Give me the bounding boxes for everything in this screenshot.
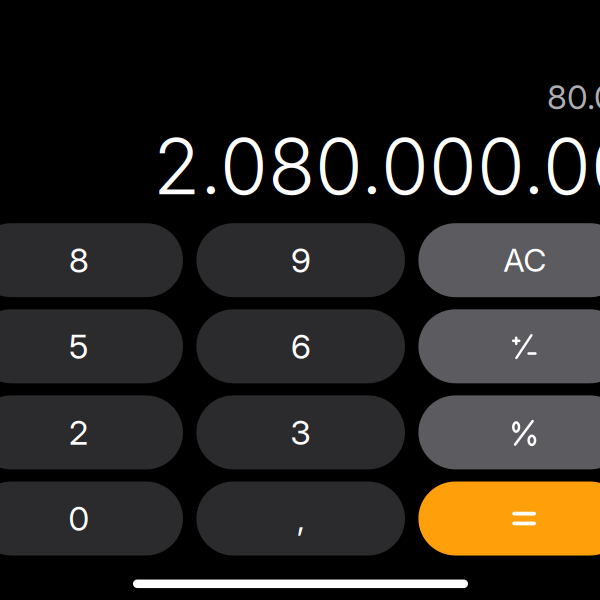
button[interactable]: Plus minus: [418, 309, 600, 383]
staticText: 2: [69, 412, 89, 453]
button[interactable]: 6: [196, 309, 405, 383]
staticText: 80.000,00: [547, 77, 600, 117]
staticText: 6: [291, 326, 311, 367]
button[interactable]: 5: [0, 309, 183, 383]
staticText: 8: [69, 240, 89, 281]
button[interactable]: ,: [196, 481, 405, 555]
staticText: AC: [503, 241, 546, 279]
button[interactable]: Equals: [418, 481, 600, 555]
button[interactable]: 3: [196, 395, 405, 469]
button[interactable]: All clear: [418, 223, 600, 297]
staticText: 0: [68, 498, 89, 539]
button[interactable]: 2: [0, 395, 183, 469]
button[interactable]: Percent: [418, 395, 600, 469]
staticText: 2.080.000.000,00: [153, 119, 600, 213]
button[interactable]: 8: [0, 223, 183, 297]
button[interactable]: 9: [196, 223, 405, 297]
staticText: 5: [69, 326, 89, 367]
staticText: 9: [291, 240, 311, 281]
button[interactable]: 0: [0, 481, 183, 555]
staticText: 3: [290, 412, 311, 453]
staticText: ,: [297, 498, 305, 539]
